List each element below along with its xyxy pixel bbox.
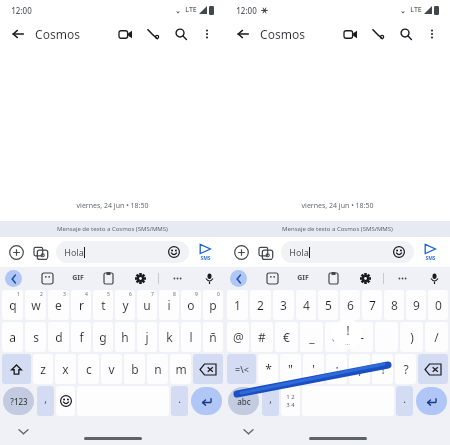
button[interactable]: : xyxy=(326,354,347,384)
button[interactable]: Stickers xyxy=(39,270,55,286)
button[interactable]: z xyxy=(33,354,53,384)
button[interactable]: Emoji xyxy=(167,245,181,259)
button[interactable]: 1 xyxy=(227,290,248,320)
button[interactable]: * xyxy=(258,354,278,384)
button[interactable]: 4 xyxy=(296,290,316,320)
button[interactable]: t xyxy=(93,290,113,320)
button[interactable]: 0 xyxy=(428,290,448,320)
button[interactable]: € xyxy=(275,322,298,352)
button[interactable]: Clipboard xyxy=(325,270,341,286)
button[interactable]: g xyxy=(93,322,113,352)
button[interactable]: ' xyxy=(303,354,324,384)
button[interactable]: _ xyxy=(300,322,323,352)
button[interactable]: v xyxy=(101,354,122,384)
button[interactable]: # xyxy=(251,322,273,352)
button[interactable]: Delete xyxy=(193,354,223,384)
button[interactable]: Emoji xyxy=(56,386,75,416)
button[interactable]: " xyxy=(280,354,301,384)
button[interactable]: / xyxy=(425,322,448,352)
button[interactable]: Hola xyxy=(56,241,189,263)
button[interactable]: 1 2 xyxy=(281,386,300,416)
button[interactable]: r xyxy=(71,290,91,320)
button[interactable]: . xyxy=(396,386,413,416)
button[interactable]: 3 xyxy=(273,290,294,320)
button[interactable]: ; xyxy=(349,354,370,384)
button[interactable]: 5 xyxy=(318,290,338,320)
button[interactable]: 7 xyxy=(362,290,382,320)
button[interactable]: 8 xyxy=(384,290,404,320)
button[interactable]: x xyxy=(55,354,76,384)
button[interactable]: Back xyxy=(8,24,28,44)
button[interactable]: Back xyxy=(233,24,253,44)
button[interactable]: ) xyxy=(400,322,423,352)
button[interactable]: Voice input xyxy=(426,270,442,286)
button[interactable]: More xyxy=(394,270,410,286)
button[interactable]: e xyxy=(48,290,69,320)
button[interactable]: @ xyxy=(227,322,249,352)
button[interactable]: u xyxy=(137,290,157,320)
button[interactable]: 9 xyxy=(406,290,426,320)
button[interactable]: n xyxy=(147,354,168,384)
button[interactable]: Add xyxy=(7,243,26,262)
button[interactable]: Back xyxy=(5,270,22,287)
button[interactable]: 2 xyxy=(250,290,271,320)
button[interactable]: Search xyxy=(171,24,191,44)
button[interactable]: Enter xyxy=(191,387,222,415)
button[interactable]: j xyxy=(137,322,157,352)
button[interactable]: ñ xyxy=(203,322,223,352)
button[interactable]: i xyxy=(159,290,179,320)
button[interactable]: d xyxy=(48,322,69,352)
button[interactable]: Back xyxy=(230,270,247,287)
button[interactable]: Clipboard xyxy=(100,270,116,286)
button[interactable]: k xyxy=(159,322,179,352)
button[interactable]: Gallery xyxy=(31,243,50,262)
button[interactable]: Settings xyxy=(357,270,373,286)
button[interactable]: =\< xyxy=(227,354,256,384)
button[interactable]: Send SMS xyxy=(194,243,216,262)
button[interactable]: q xyxy=(2,290,23,320)
button[interactable]: More xyxy=(169,270,185,286)
button[interactable]: Stickers xyxy=(264,270,280,286)
button[interactable]: - xyxy=(350,322,373,352)
button[interactable]: & xyxy=(325,322,348,352)
button[interactable]: a xyxy=(2,322,23,352)
button[interactable]: , xyxy=(262,386,279,416)
button[interactable]: abc xyxy=(228,387,259,415)
button[interactable]: Hola xyxy=(281,241,414,263)
button[interactable]: Shift xyxy=(2,354,31,384)
button[interactable]: More options xyxy=(422,24,442,44)
button[interactable]: ! xyxy=(372,354,393,384)
button[interactable]: Search xyxy=(396,24,416,44)
button[interactable]: Cosmos xyxy=(260,26,305,42)
button[interactable]: Call xyxy=(143,24,163,44)
button[interactable]: Enter xyxy=(416,387,447,415)
button[interactable]: Voice input xyxy=(201,270,217,286)
button[interactable]: More options xyxy=(197,24,217,44)
button[interactable]: y xyxy=(115,290,135,320)
button[interactable]: Gallery xyxy=(256,243,275,262)
button[interactable]: Call xyxy=(368,24,388,44)
button[interactable]: w xyxy=(25,290,46,320)
button[interactable]: , xyxy=(37,386,54,416)
button[interactable]: m xyxy=(170,354,191,384)
button[interactable]: h xyxy=(115,322,135,352)
button[interactable]: Send SMS xyxy=(419,243,441,262)
button[interactable]: 6 xyxy=(340,290,360,320)
button[interactable]: Settings xyxy=(132,270,148,286)
button[interactable]: f xyxy=(71,322,91,352)
button[interactable]: p xyxy=(203,290,223,320)
button[interactable]: Cosmos xyxy=(35,26,80,42)
button[interactable]: Delete xyxy=(418,354,448,384)
button[interactable]: Hide keyboard xyxy=(16,424,30,438)
button[interactable]: GIF xyxy=(72,273,84,283)
button[interactable]: b xyxy=(124,354,145,384)
button[interactable]: ? xyxy=(395,354,416,384)
button[interactable]: Video call xyxy=(115,24,135,44)
button[interactable]: . xyxy=(171,386,188,416)
button[interactable]: Add xyxy=(232,243,251,262)
button[interactable]: Video call xyxy=(340,24,360,44)
button[interactable]: GIF xyxy=(297,273,309,283)
